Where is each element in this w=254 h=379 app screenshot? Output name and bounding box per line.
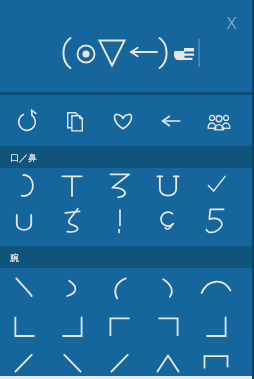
button[interactable]: Stroke 7: [48, 308, 96, 348]
button[interactable]: Redo: [4, 98, 50, 144]
button[interactable]: Stroke 3: [96, 268, 144, 308]
button[interactable]: Symbol 7: [48, 203, 96, 238]
button[interactable]: Stroke 15: [192, 348, 240, 379]
button[interactable]: Entered symbols: [60, 36, 196, 70]
button[interactable]: Copy: [52, 98, 98, 144]
button[interactable]: Stroke 2: [48, 268, 96, 308]
button[interactable]: Stroke 12: [48, 348, 96, 379]
staticText: 口／鼻: [10, 152, 37, 163]
button[interactable]: Symbol 5: [192, 168, 240, 203]
button[interactable]: Contacts: [196, 98, 242, 144]
button[interactable]: Stroke 14: [144, 348, 192, 379]
button[interactable]: Symbol 4: [144, 168, 192, 203]
button[interactable]: Favourite: [100, 98, 146, 144]
button[interactable]: Symbol 8: [96, 203, 144, 238]
button[interactable]: Stroke 9: [144, 308, 192, 348]
button[interactable]: Close: [218, 8, 246, 36]
button[interactable]: 口／鼻: [0, 146, 254, 168]
button[interactable]: Stroke 8: [96, 308, 144, 348]
button[interactable]: Back: [148, 98, 194, 144]
button[interactable]: Stroke 11: [0, 348, 48, 379]
button[interactable]: Symbol 10: [192, 203, 240, 238]
button[interactable]: Stroke 4: [144, 268, 192, 308]
button[interactable]: 腕: [0, 246, 254, 268]
staticText: 腕: [10, 252, 19, 263]
button[interactable]: Stroke 6: [0, 308, 48, 348]
button[interactable]: Stroke 10: [192, 308, 240, 348]
button[interactable]: Stroke 1: [0, 268, 48, 308]
button[interactable]: Symbol 2: [48, 168, 96, 203]
button[interactable]: Symbol 9: [144, 203, 192, 238]
button[interactable]: Stroke 5: [192, 268, 240, 308]
button[interactable]: Stroke 13: [96, 348, 144, 379]
button[interactable]: Symbol 6: [0, 203, 48, 238]
button[interactable]: Symbol 3: [96, 168, 144, 203]
staticText: X: [227, 11, 237, 34]
button[interactable]: Symbol 1: [0, 168, 48, 203]
